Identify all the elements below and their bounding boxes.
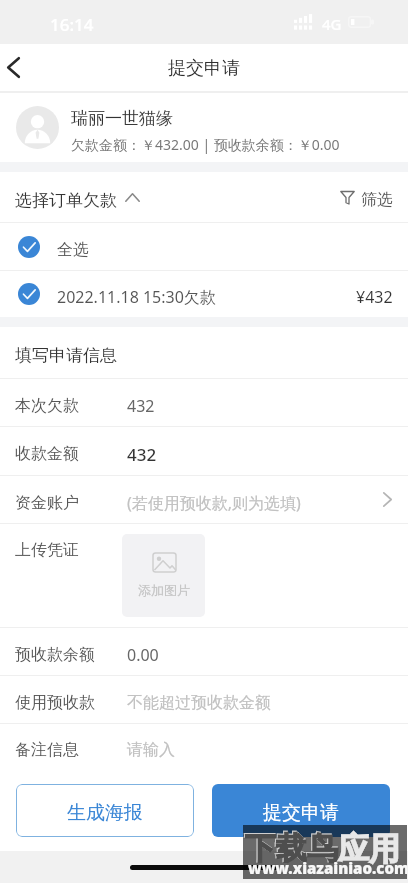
- staticText: 瑞丽一世猫缘: [71, 108, 173, 129]
- staticText: 应用: [338, 829, 400, 868]
- staticText: 432: [127, 395, 155, 417]
- staticText: 资金账户: [15, 493, 79, 513]
- staticText: (若使用预收款,则为选填): [127, 492, 301, 514]
- staticText: 16:14: [50, 13, 94, 36]
- button[interactable]: 本次欠款: [0, 379, 408, 426]
- staticText: 本次欠款: [15, 396, 79, 416]
- button[interactable]: 生成海报: [16, 784, 194, 837]
- staticText: 全选: [57, 240, 89, 260]
- staticText: 上传凭证: [15, 540, 79, 560]
- button[interactable]: 收款金额: [0, 427, 408, 475]
- button[interactable]: 返回: [0, 44, 36, 91]
- staticText: 筛选: [361, 190, 393, 210]
- staticText: 预收款余额: [15, 645, 95, 665]
- staticText: 添加图片: [138, 582, 190, 598]
- staticText: 备注信息: [15, 740, 79, 760]
- staticText: 提交申请: [263, 801, 339, 825]
- button[interactable]: 预收款余额: [0, 628, 408, 675]
- staticText: www.xiazainiao.com: [248, 858, 407, 878]
- staticText: 使用预收款: [15, 693, 95, 713]
- button[interactable]: 筛选: [340, 187, 393, 207]
- button[interactable]: 2022.11.18 15:30欠款: [0, 271, 408, 317]
- button[interactable]: 提交申请: [212, 784, 390, 837]
- staticText: ¥432: [356, 286, 393, 308]
- staticText: 选择订单欠款: [15, 190, 117, 211]
- button[interactable]: 资金账户: [0, 476, 408, 523]
- staticText: 下载鸟: [245, 829, 338, 868]
- staticText: 下载鸟: [244, 828, 337, 867]
- button[interactable]: 备注信息: [0, 724, 408, 770]
- staticText: 欠款金额：￥432.00 | 预收款余额：￥0.00: [71, 135, 340, 154]
- staticText: 提交申请: [168, 57, 240, 80]
- button[interactable]: 使用预收款: [0, 676, 408, 723]
- button[interactable]: 选择订单欠款: [15, 187, 140, 208]
- button[interactable]: 全选: [0, 223, 408, 270]
- staticText: 填写申请信息: [15, 345, 117, 366]
- staticText: 请输入: [127, 740, 175, 760]
- staticText: 生成海报: [67, 801, 143, 825]
- staticText: 432: [127, 443, 157, 466]
- staticText: 收款金额: [15, 444, 79, 464]
- staticText: 不能超过预收款金额: [127, 693, 271, 713]
- button[interactable]: 添加图片: [122, 534, 205, 617]
- staticText: 2022.11.18 15:30欠款: [57, 286, 216, 308]
- staticText: 4G: [322, 14, 342, 34]
- staticText: 0.00: [127, 644, 159, 666]
